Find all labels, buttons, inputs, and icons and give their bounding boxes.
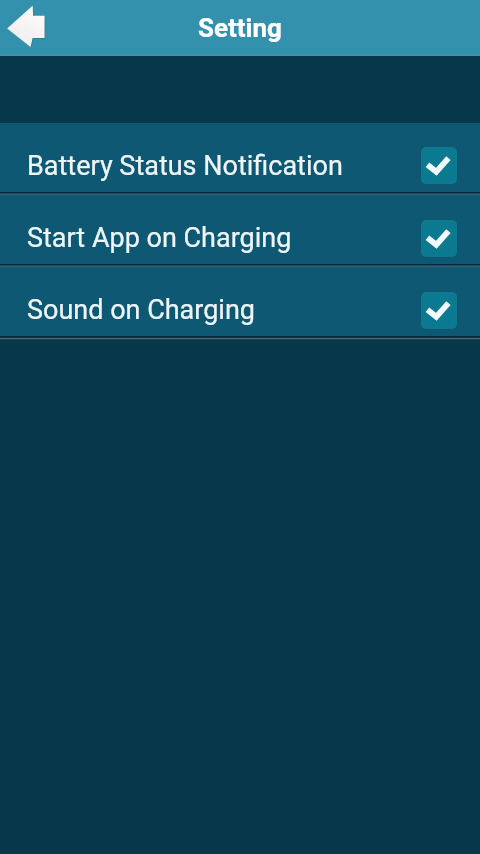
button[interactable]: Start App on Charging: [0, 196, 480, 264]
button[interactable]: Sound on Charging: [0, 268, 480, 336]
staticText: Battery Status Notification: [27, 150, 343, 182]
staticText: Sound on Charging: [27, 294, 255, 326]
button[interactable]: Toggle setting: [421, 220, 457, 257]
staticText: Start App on Charging: [27, 222, 292, 254]
button[interactable]: Toggle setting: [421, 292, 457, 329]
button[interactable]: Back: [0, 0, 56, 56]
staticText: Setting: [198, 13, 282, 43]
button[interactable]: Toggle setting: [421, 147, 457, 184]
button[interactable]: Battery Status Notification: [0, 123, 480, 192]
